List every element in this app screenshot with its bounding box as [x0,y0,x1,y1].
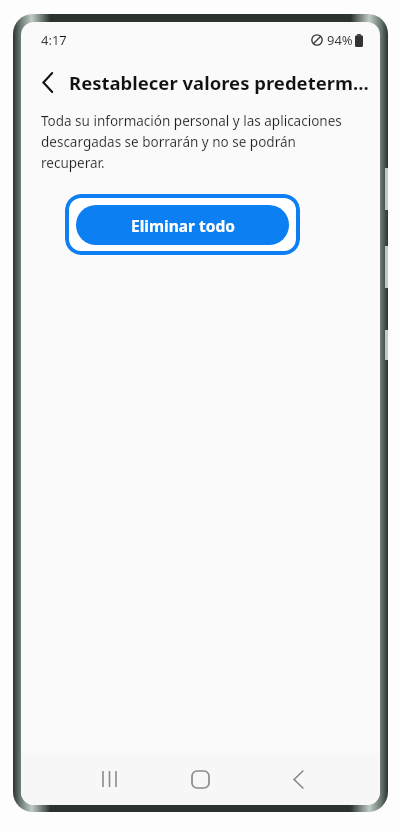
button[interactable]: Home [176,755,224,803]
staticText: Restablecer valores predeterm… [69,70,369,95]
button[interactable]: Back [274,755,322,803]
button[interactable]: Back [31,65,65,99]
staticText: 4:17 [41,31,67,49]
button[interactable]: Eliminar todo [65,194,300,255]
staticText: Toda su información personal y las aplic… [41,112,362,172]
button[interactable]: Recents [85,755,133,803]
staticText: 94% [327,31,353,49]
staticText: Eliminar todo [131,215,235,236]
